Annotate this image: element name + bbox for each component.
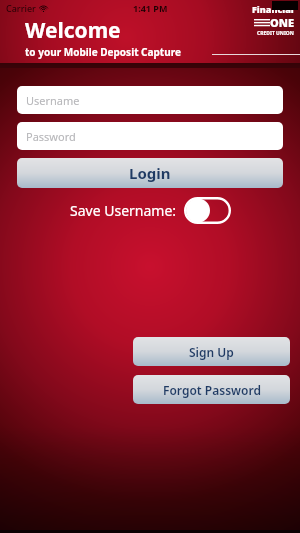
staticText: Password [26,129,76,144]
button[interactable]: Sign Up [133,337,290,366]
staticText: 1:41 PM [133,2,168,14]
staticText: ONE [270,15,294,30]
staticText: Forgot Password [163,382,261,398]
staticText: Carrier [6,2,36,14]
button[interactable]: Forgot Password [133,375,290,404]
button[interactable]: Login [17,158,283,188]
staticText: CREDIT UNION [257,30,294,37]
staticText: Welcome [25,16,121,45]
button[interactable]: Password [17,122,283,150]
staticText: Financial [252,3,294,15]
button[interactable]: Username [17,86,283,114]
button[interactable]: Save Username toggle [17,197,283,224]
staticText: to your Mobile Deposit Capture [25,45,181,59]
staticText: Sign Up [189,344,234,360]
staticText: Username [26,93,80,108]
staticText: Save Username: [70,201,177,220]
staticText: Login [129,163,171,183]
